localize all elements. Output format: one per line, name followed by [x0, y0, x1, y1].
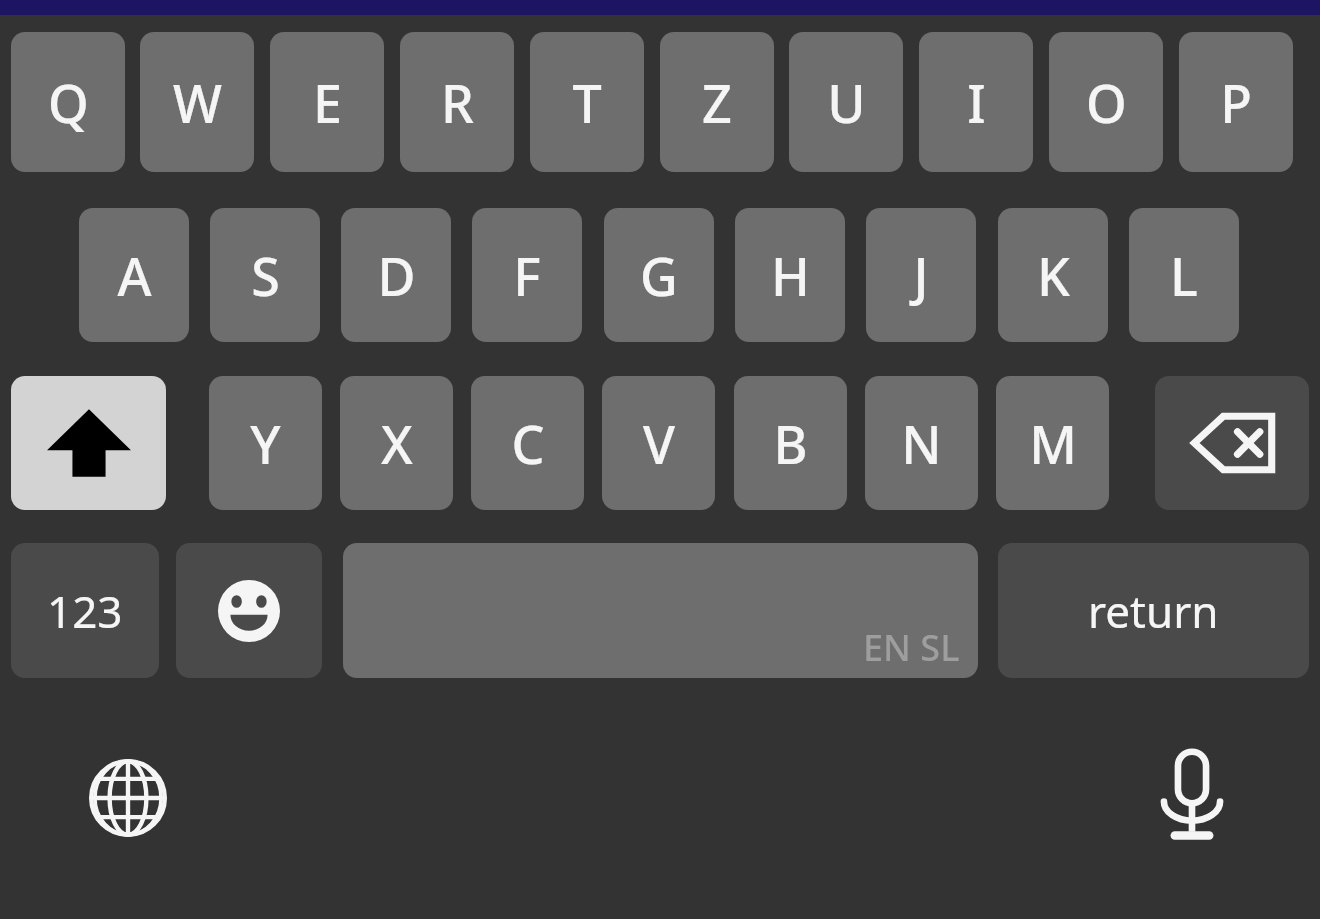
button[interactable]: 123 — [11, 543, 159, 678]
staticText: Q — [48, 67, 89, 138]
staticText: M — [1029, 408, 1077, 479]
button[interactable]: F — [472, 208, 582, 342]
button[interactable]: Z — [660, 32, 774, 172]
staticText: W — [173, 67, 222, 138]
button[interactable]: H — [735, 208, 845, 342]
staticText: C — [511, 408, 545, 479]
button[interactable]: V — [602, 376, 715, 510]
staticText: Y — [250, 408, 281, 479]
staticText: I — [967, 67, 986, 138]
staticText: U — [827, 67, 866, 138]
button[interactable]: G — [604, 208, 714, 342]
staticText: H — [771, 240, 810, 311]
button[interactable]: A — [79, 208, 189, 342]
button[interactable]: D — [341, 208, 451, 342]
button[interactable]: U — [789, 32, 903, 172]
button[interactable]: P — [1179, 32, 1293, 172]
button[interactable]: Emoji — [176, 543, 322, 678]
staticText: EN SL — [863, 623, 960, 672]
button[interactable]: I — [919, 32, 1033, 172]
staticText: R — [441, 67, 474, 138]
button[interactable]: L — [1129, 208, 1239, 342]
staticText: K — [1037, 240, 1070, 311]
button[interactable]: R — [400, 32, 514, 172]
staticText: return — [1088, 581, 1219, 641]
button[interactable]: B — [734, 376, 847, 510]
staticText: G — [640, 240, 678, 311]
staticText: V — [643, 408, 675, 479]
button[interactable]: S — [210, 208, 320, 342]
button[interactable]: N — [865, 376, 978, 510]
staticText: J — [913, 240, 929, 311]
staticText: B — [773, 408, 808, 479]
staticText: P — [1220, 67, 1252, 138]
staticText: T — [572, 67, 602, 138]
button[interactable]: Space — [343, 543, 978, 678]
button[interactable]: M — [996, 376, 1109, 510]
staticText: S — [251, 240, 280, 311]
button[interactable]: W — [140, 32, 254, 172]
button[interactable]: K — [998, 208, 1108, 342]
button[interactable]: Change language — [78, 748, 178, 848]
button[interactable]: Y — [209, 376, 322, 510]
staticText: X — [381, 408, 413, 479]
staticText: N — [901, 408, 942, 479]
button[interactable]: J — [866, 208, 976, 342]
staticText: Z — [702, 67, 732, 138]
staticText: E — [313, 67, 342, 138]
staticText: D — [377, 240, 416, 311]
staticText: 123 — [47, 581, 123, 641]
staticText: A — [117, 240, 152, 311]
button[interactable]: Q — [11, 32, 125, 172]
button[interactable]: Backspace — [1155, 376, 1309, 510]
staticText: F — [513, 240, 541, 311]
button[interactable]: X — [340, 376, 453, 510]
button[interactable]: return — [998, 543, 1309, 678]
button[interactable]: Shift — [11, 376, 166, 510]
button[interactable]: E — [270, 32, 384, 172]
staticText: O — [1086, 67, 1127, 138]
button[interactable]: Voice input — [1142, 745, 1242, 845]
button[interactable]: C — [471, 376, 584, 510]
button[interactable]: O — [1049, 32, 1163, 172]
staticText: L — [1170, 240, 1198, 311]
button[interactable]: T — [530, 32, 644, 172]
